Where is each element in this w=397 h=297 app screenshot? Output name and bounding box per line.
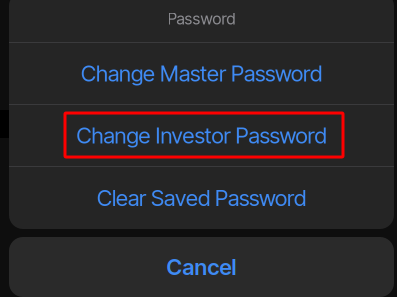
button[interactable]: Cancel	[9, 237, 394, 297]
button[interactable]: Change Investor Password	[9, 105, 394, 166]
staticText: Clear Saved Password	[97, 185, 306, 211]
staticText: Cancel	[166, 254, 236, 280]
staticText: Change Investor Password	[76, 122, 326, 149]
staticText: Password	[167, 9, 235, 28]
button[interactable]: Clear Saved Password	[9, 167, 394, 229]
staticText: Change Master Password	[81, 60, 322, 87]
button[interactable]: Change Master Password	[9, 43, 394, 104]
